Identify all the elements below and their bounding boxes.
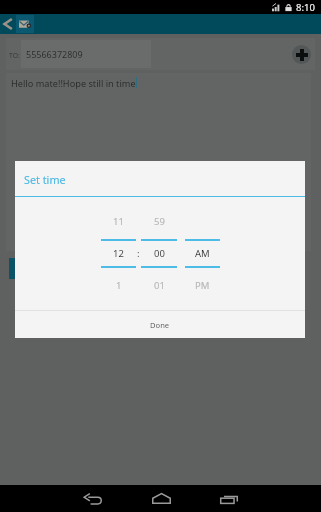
button[interactable]: 12 — [101, 241, 136, 266]
button[interactable]: 59 — [141, 208, 177, 234]
button[interactable] — [9, 258, 79, 279]
staticText: AM — [195, 247, 210, 260]
button[interactable]: Done — [15, 311, 305, 338]
button[interactable]: Home — [139, 485, 183, 512]
staticText: 55566372809 — [26, 48, 83, 60]
staticText: 11 — [113, 215, 124, 228]
button[interactable]: 01 — [141, 272, 177, 298]
button[interactable]: 55566372809 — [21, 40, 151, 68]
staticText: Hello mate!!Hope still in time — [11, 77, 136, 90]
button[interactable]: 1 — [101, 272, 136, 298]
button[interactable]: AM — [185, 241, 220, 266]
staticText: 1 — [116, 279, 122, 292]
staticText: 8:10 — [296, 1, 315, 14]
button[interactable]: Recent apps — [207, 485, 251, 512]
button[interactable]: Add recipient — [292, 45, 311, 64]
staticText: 00 — [154, 247, 165, 260]
staticText: 59 — [154, 215, 165, 228]
staticText: TO: — [9, 51, 20, 60]
staticText: Set time — [24, 172, 66, 187]
button[interactable]: 11 — [101, 208, 136, 234]
button[interactable]: Navigate up — [0, 14, 15, 34]
staticText: : — [137, 247, 140, 260]
staticText: 12 — [113, 247, 124, 260]
button[interactable] — [6, 73, 311, 251]
button[interactable]: PM — [185, 272, 220, 298]
staticText: 01 — [154, 279, 165, 292]
button[interactable]: 00 — [141, 241, 177, 266]
button[interactable]: Back — [70, 485, 114, 512]
button[interactable]: App icon — [16, 15, 34, 33]
staticText: PM — [195, 279, 210, 292]
staticText: Done — [150, 320, 170, 330]
